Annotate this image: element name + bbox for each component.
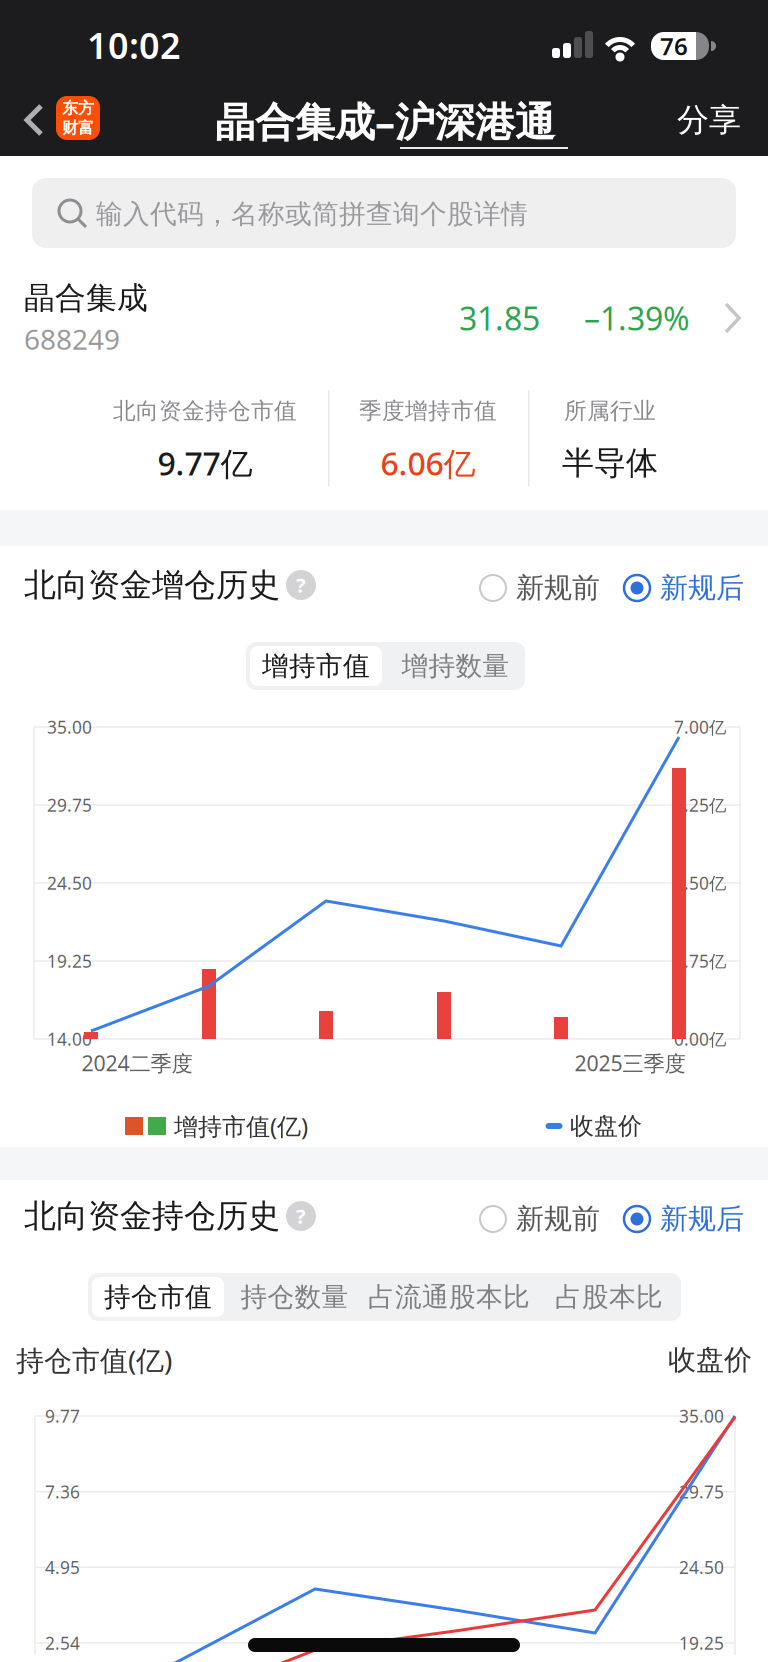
button[interactable]: 输入代码，名称或简拼查询个股详情 — [32, 178, 736, 248]
button[interactable]: 持仓市值 — [88, 1273, 228, 1321]
button[interactable]: 新规前 — [480, 571, 600, 605]
staticText: 1.75亿 — [674, 949, 726, 972]
staticText: 新规后 — [660, 1202, 744, 1236]
staticText: 6.06亿 — [380, 442, 475, 484]
staticText: 收盘价 — [668, 1343, 752, 1377]
staticText: 新规前 — [516, 1202, 600, 1236]
staticText: 688249 — [24, 320, 120, 358]
staticText: 晶合集成–沪深港通 — [215, 94, 555, 147]
staticText: 29.75 — [47, 793, 92, 816]
staticText: 北向资金增仓历史 — [24, 565, 280, 605]
staticText: ? — [296, 572, 306, 598]
staticText: 占股本比 — [555, 1281, 663, 1313]
button[interactable]: 占股本比 — [537, 1273, 681, 1321]
staticText: 新规前 — [516, 571, 600, 605]
staticText: 24.50 — [47, 871, 92, 894]
button[interactable]: 新规后 — [624, 1202, 744, 1236]
button[interactable]: 新规后 — [624, 571, 744, 605]
staticText: 31.85 — [459, 297, 540, 339]
staticText: 4.95 — [45, 1556, 80, 1579]
staticText: 持仓市值 — [104, 1281, 212, 1313]
staticText: 2025三季度 — [574, 1049, 685, 1077]
staticText: 所属行业 — [564, 397, 656, 425]
staticText: 5.25亿 — [674, 793, 726, 816]
staticText: 2024二季度 — [81, 1049, 192, 1077]
staticText: 9.77 — [45, 1404, 80, 1427]
staticText: 9.77亿 — [157, 442, 252, 484]
staticText: 10:02 — [87, 21, 181, 69]
button[interactable]: Back — [25, 104, 45, 138]
staticText: 7.36 — [45, 1480, 80, 1503]
staticText: 晶合集成 — [24, 279, 148, 317]
staticText: 占流通股本比 — [368, 1281, 530, 1313]
staticText: 14.00 — [47, 1027, 92, 1050]
staticText: 2.54 — [45, 1631, 80, 1654]
staticText: 35.00 — [47, 715, 92, 738]
button[interactable]: 增持市值 — [246, 642, 386, 690]
staticText: 35.00 — [679, 1404, 724, 1427]
staticText: 分享 — [677, 100, 741, 140]
staticText: 季度增持市值 — [359, 397, 497, 425]
staticText: 收盘价 — [570, 1111, 642, 1141]
button[interactable]: 帮助 — [286, 1201, 316, 1231]
button[interactable]: 增持数量 — [386, 642, 525, 690]
button[interactable]: 分享 — [677, 100, 741, 140]
staticText: ? — [296, 1203, 306, 1229]
staticText: 19.25 — [679, 1631, 724, 1654]
staticText: 29.75 — [679, 1480, 724, 1503]
staticText: 持仓市值(亿) — [16, 1341, 172, 1379]
staticText: 东方 — [62, 98, 94, 118]
staticText: 0.00亿 — [674, 1027, 726, 1050]
button[interactable]: 晶合集成 — [0, 260, 768, 380]
staticText: 7.00亿 — [674, 715, 726, 738]
staticText: 半导体 — [562, 443, 658, 483]
staticText: 新规后 — [660, 571, 744, 605]
staticText: 增持数量 — [401, 650, 509, 682]
staticText: 增持市值(亿) — [174, 1110, 308, 1142]
staticText: 北向资金持仓历史 — [24, 1196, 280, 1236]
button[interactable]: 新规前 — [480, 1202, 600, 1236]
staticText: –1.39% — [584, 297, 690, 339]
staticText: 财富 — [62, 118, 94, 138]
staticText: 3.50亿 — [674, 871, 726, 894]
button[interactable]: 帮助 — [286, 570, 316, 600]
button[interactable]: 持仓数量 — [228, 1273, 361, 1321]
button[interactable]: 占流通股本比 — [361, 1273, 537, 1321]
staticText: 持仓数量 — [240, 1281, 348, 1313]
staticText: 北向资金持仓市值 — [113, 397, 297, 425]
staticText: 19.25 — [47, 949, 92, 972]
button[interactable]: 东方财富 — [56, 96, 100, 140]
staticText: 24.50 — [679, 1556, 724, 1579]
staticText: 输入代码，名称或简拼查询个股详情 — [96, 198, 528, 230]
staticText: 76 — [660, 30, 688, 62]
staticText: 增持市值 — [262, 650, 370, 682]
